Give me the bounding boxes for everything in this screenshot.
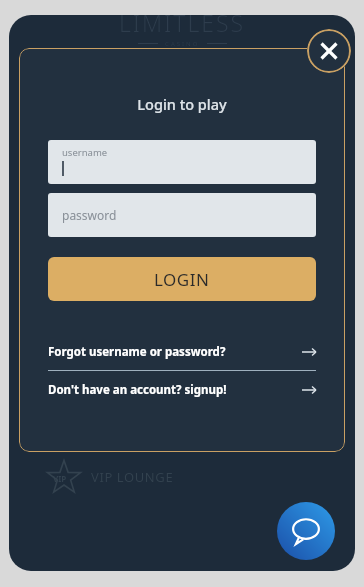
button[interactable]: Don't have an account? signup! [48,371,316,408]
staticText: username [62,146,108,159]
button[interactable]: password [48,193,316,237]
button[interactable]: LOGIN [48,257,316,301]
button[interactable]: Chat support [277,502,335,560]
staticText: LOGIN [154,268,210,291]
staticText: password [62,207,117,223]
staticText: LIMITLESS [119,15,246,38]
button[interactable]: Close [307,29,351,73]
button[interactable]: Forgot username or password? [48,333,316,370]
button[interactable]: username [48,140,316,184]
staticText: Login to play [48,94,316,114]
staticText: VIP LOUNGE [91,468,174,486]
staticText: Forgot username or password? [48,344,226,360]
button[interactable]: VIP LOUNGE [45,458,174,496]
staticText: VIP [53,473,67,484]
staticText: Don't have an account? signup! [48,382,227,398]
